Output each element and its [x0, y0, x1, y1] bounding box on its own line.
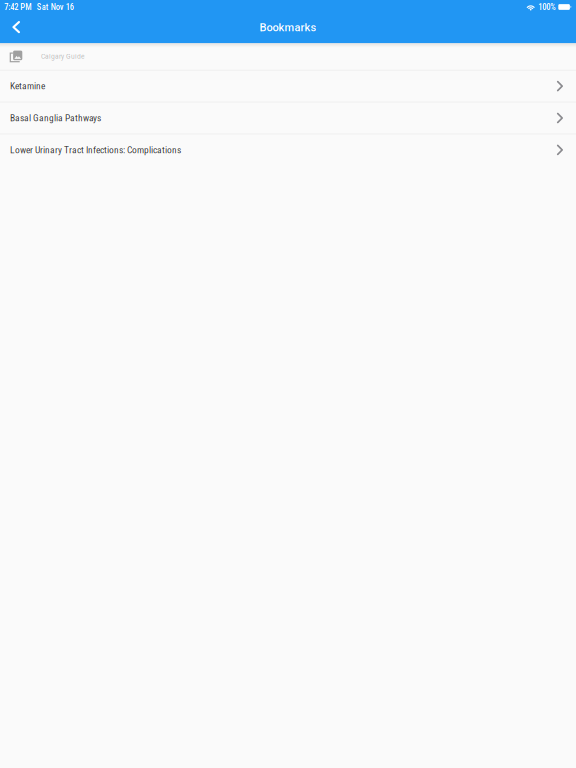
button[interactable]: Lower Urinary Tract Infections: Complica… — [0, 134, 576, 165]
staticText: 100% — [538, 2, 556, 12]
staticText: Sat Nov 16 — [37, 2, 74, 12]
button[interactable]: Basal Ganglia Pathways — [0, 102, 576, 133]
button[interactable]: Back — [0, 14, 34, 43]
staticText: Bookmarks — [259, 21, 316, 34]
staticText: Lower Urinary Tract Infections: Complica… — [10, 144, 181, 155]
staticText: Ketamine — [10, 81, 45, 92]
button[interactable]: Ketamine — [0, 71, 576, 102]
staticText: 7:42 PM — [4, 2, 31, 12]
staticText: Basal Ganglia Pathways — [10, 112, 101, 124]
staticText: Calgary Guide — [41, 53, 85, 60]
